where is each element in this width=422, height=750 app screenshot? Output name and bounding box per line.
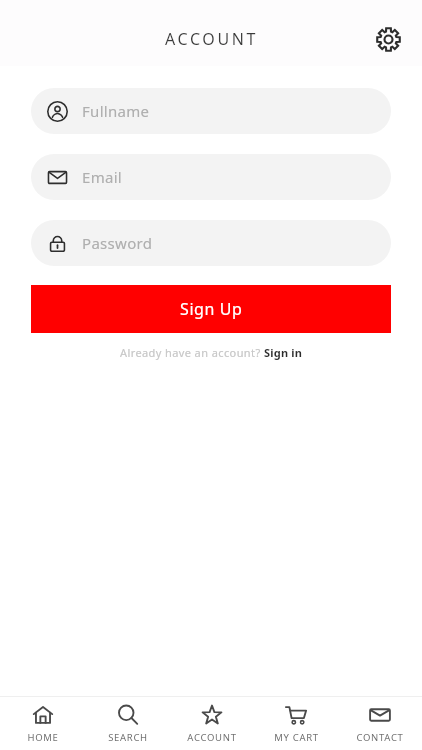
staticText: Sign in xyxy=(264,345,303,360)
staticText: HOME xyxy=(27,731,59,744)
staticText: Password xyxy=(82,233,153,253)
button[interactable]: SEARCH xyxy=(85,697,170,750)
button[interactable]: ACCOUNT xyxy=(170,697,254,750)
staticText: Email xyxy=(82,167,123,187)
button[interactable]: Fullname xyxy=(31,88,391,134)
staticText: Already have an account? xyxy=(120,345,264,360)
staticText: Sign Up xyxy=(180,298,243,320)
staticText: CONTACT xyxy=(356,731,404,744)
button[interactable]: Password xyxy=(31,220,391,266)
button[interactable]: Sign in xyxy=(264,345,303,360)
staticText: Fullname xyxy=(82,101,150,121)
button[interactable]: CONTACT xyxy=(338,697,422,750)
staticText: ACCOUNT xyxy=(165,28,258,50)
staticText: SEARCH xyxy=(108,731,148,744)
button[interactable]: Sign Up xyxy=(31,285,391,333)
button[interactable]: Email xyxy=(31,154,391,200)
button[interactable]: MY CART xyxy=(254,697,338,750)
staticText: ACCOUNT xyxy=(187,731,237,744)
button[interactable]: Settings xyxy=(368,19,408,59)
button[interactable]: HOME xyxy=(0,697,85,750)
staticText: MY CART xyxy=(274,731,319,744)
